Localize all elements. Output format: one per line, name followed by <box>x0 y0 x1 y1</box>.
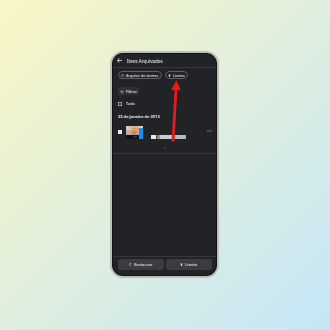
button[interactable]: Lixeira <box>166 259 212 270</box>
button[interactable]: More options <box>113 125 216 140</box>
staticText: Itens Arquivados <box>127 58 163 64</box>
button[interactable]: Lixeira <box>165 71 188 79</box>
staticText: Arquivo de stories <box>126 73 159 78</box>
staticText: Lixeira <box>185 262 198 267</box>
staticText: 23 de janeiro de 2013 <box>118 114 160 119</box>
staticText: Filtros <box>126 89 137 94</box>
staticText: Lixeira <box>173 73 185 78</box>
staticText: Restaurar <box>134 262 153 267</box>
button[interactable]: More options <box>204 126 214 136</box>
button[interactable]: Back <box>115 56 124 65</box>
button[interactable]: Filtros <box>118 87 139 95</box>
staticText: Tudo <box>126 101 135 106</box>
button[interactable]: Arquivo de stories <box>118 71 162 79</box>
button[interactable]: Restaurar <box>118 259 164 270</box>
button[interactable]: Tudo <box>118 100 135 107</box>
